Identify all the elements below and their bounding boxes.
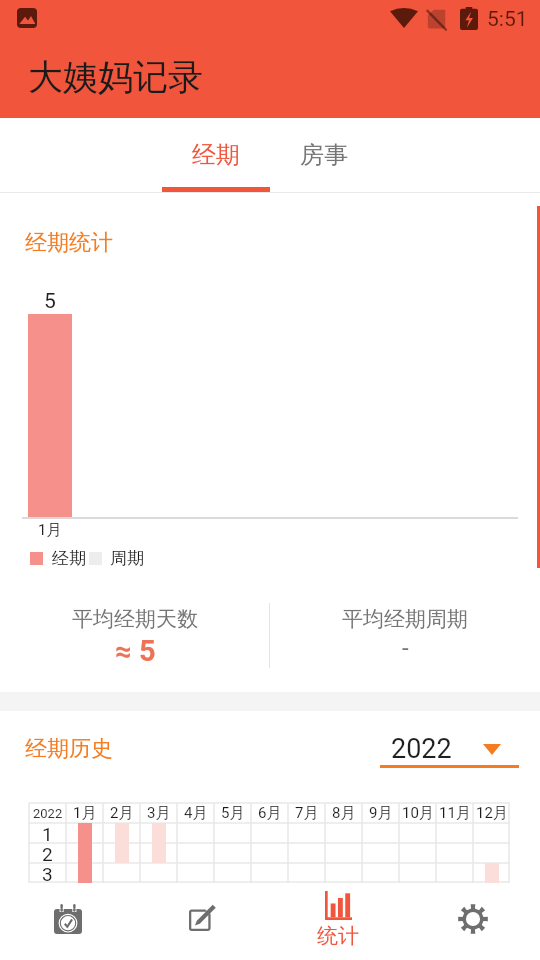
staticText: 5:51 bbox=[487, 7, 528, 32]
staticText: 8月 bbox=[332, 804, 356, 823]
staticText: ≈ 5 bbox=[115, 634, 156, 668]
staticText: 10月 bbox=[402, 804, 434, 823]
staticText: 2022 bbox=[391, 733, 452, 765]
staticText: 2月 bbox=[110, 804, 134, 823]
button[interactable]: 房事 bbox=[270, 118, 378, 192]
button[interactable]: 经期 bbox=[162, 118, 270, 192]
staticText: 2022 bbox=[33, 806, 63, 821]
staticText: - bbox=[402, 634, 409, 662]
staticText: 经期历史 bbox=[25, 735, 113, 763]
staticText: 平均经期周期 bbox=[342, 606, 468, 632]
staticText: 平均经期天数 bbox=[72, 606, 198, 632]
staticText: 6月 bbox=[258, 804, 282, 823]
button[interactable]: Settings bbox=[405, 883, 540, 960]
staticText: 2 bbox=[42, 843, 53, 863]
staticText: 统计 bbox=[317, 923, 359, 949]
staticText: 1 bbox=[42, 823, 53, 843]
staticText: 5 bbox=[44, 289, 56, 314]
staticText: 大姨妈记录 bbox=[28, 55, 203, 99]
staticText: 1月 bbox=[73, 804, 97, 823]
staticText: 11月 bbox=[439, 804, 471, 823]
button[interactable]: Calendar records bbox=[0, 883, 135, 960]
staticText: 12月 bbox=[476, 804, 508, 823]
staticText: 5月 bbox=[221, 804, 245, 823]
staticText: 房事 bbox=[300, 140, 348, 170]
staticText: 7月 bbox=[295, 804, 319, 823]
staticText: 经期 bbox=[192, 140, 240, 170]
staticText: 3 bbox=[42, 863, 53, 883]
staticText: 周期 bbox=[110, 548, 144, 569]
button[interactable]: Add record bbox=[135, 883, 270, 960]
staticText: 9月 bbox=[369, 804, 393, 823]
staticText: 1月 bbox=[38, 521, 62, 540]
button[interactable]: 2022 bbox=[380, 725, 520, 773]
button[interactable]: 统计 bbox=[270, 883, 405, 960]
staticText: 4月 bbox=[184, 804, 208, 823]
staticText: 3月 bbox=[147, 804, 171, 823]
staticText: 经期统计 bbox=[25, 229, 113, 257]
staticText: 经期 bbox=[52, 548, 86, 569]
